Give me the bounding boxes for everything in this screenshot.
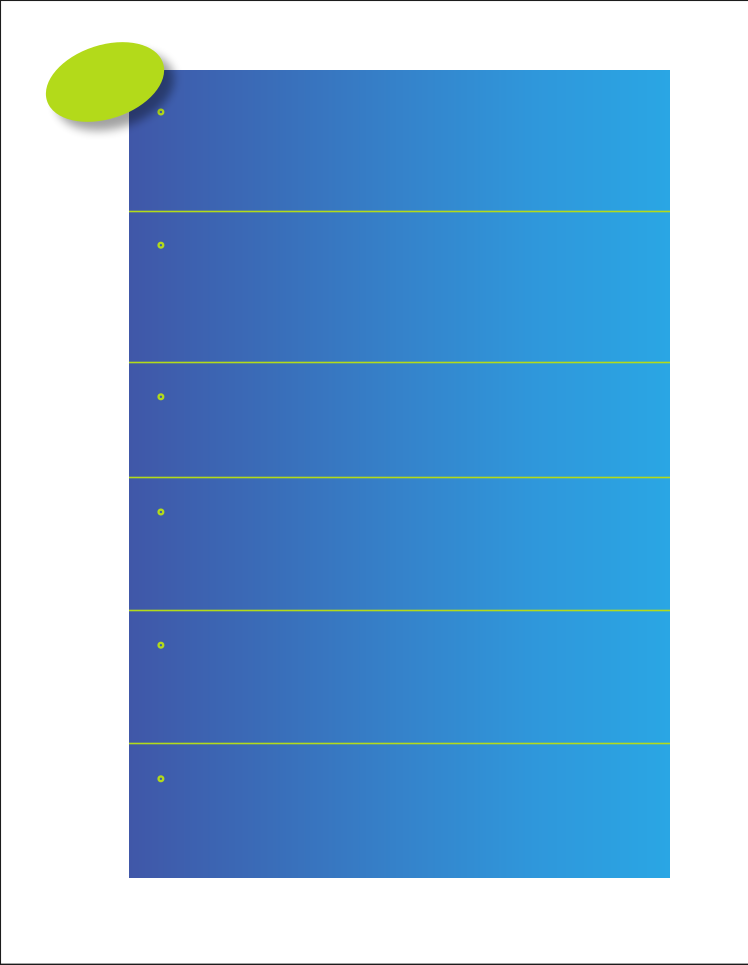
button[interactable]: Outline item 4 (129, 477, 670, 610)
button[interactable]: Outline item 1 (129, 70, 670, 211)
button[interactable]: Outline item 3 (129, 362, 670, 477)
button[interactable]: Outline item 6 (129, 743, 670, 878)
button[interactable]: Outline item 2 (129, 211, 670, 362)
button[interactable]: Outline item 5 (129, 610, 670, 743)
